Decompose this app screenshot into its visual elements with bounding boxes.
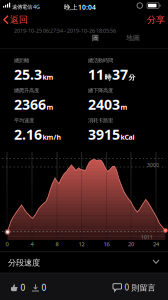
staticText: 2366	[14, 95, 46, 114]
staticText: 25.3	[14, 65, 42, 84]
staticText: 3915	[88, 125, 120, 144]
staticText: 消耗卡路里	[88, 117, 113, 124]
staticText: 2.16	[14, 125, 42, 144]
button[interactable]: 讚	[10, 282, 25, 293]
button[interactable]: 返回	[4, 14, 28, 25]
staticText: 分享	[147, 14, 165, 25]
staticText: 0	[5, 240, 8, 248]
button[interactable]: 分段速度	[0, 252, 168, 272]
staticText: kCal	[120, 132, 134, 142]
staticText: 16	[103, 240, 109, 248]
staticText: 2019-10-25 06:27:54 - 2019-10-26 18:05:5…	[14, 27, 116, 34]
staticText: 總距離	[14, 57, 29, 64]
button[interactable]: 地圖	[126, 33, 140, 42]
staticText: 37	[112, 65, 128, 84]
staticText: 圖	[92, 33, 99, 42]
staticText: 平均速度	[14, 117, 34, 124]
staticText: 時	[104, 73, 111, 82]
staticText: 12	[78, 240, 84, 248]
staticText: km	[42, 72, 53, 82]
staticText: 地圖	[126, 33, 140, 42]
button[interactable]: 留言	[113, 282, 155, 293]
button[interactable]: 分享	[147, 14, 165, 25]
staticText: 11	[88, 65, 104, 84]
staticText: 分段速度	[8, 257, 40, 268]
staticText: 8	[55, 240, 58, 248]
staticText: 0	[20, 282, 25, 293]
staticText: 總活動時間	[88, 57, 113, 64]
staticText: 24	[153, 240, 159, 248]
staticText: 0	[41, 282, 46, 293]
staticText: m	[46, 102, 53, 112]
staticText: 返回	[10, 14, 28, 25]
staticText: 分	[128, 73, 135, 82]
staticText: 總爬升高度	[14, 87, 39, 94]
staticText: 4	[30, 240, 33, 248]
staticText: km/h	[42, 132, 61, 142]
staticText: 3000	[147, 161, 159, 168]
button[interactable]: 下載	[32, 282, 46, 293]
staticText: 0 則留言	[124, 282, 155, 293]
staticText: 總下降高度	[88, 87, 113, 94]
staticText: 1011	[141, 234, 153, 240]
button[interactable]: 圖	[92, 33, 99, 42]
staticText: 20	[128, 240, 134, 248]
staticText: 遠傳電信 4G	[12, 3, 40, 10]
staticText: 晚上10:04	[64, 2, 96, 12]
staticText: 2403	[88, 95, 120, 114]
staticText: m	[120, 102, 127, 112]
